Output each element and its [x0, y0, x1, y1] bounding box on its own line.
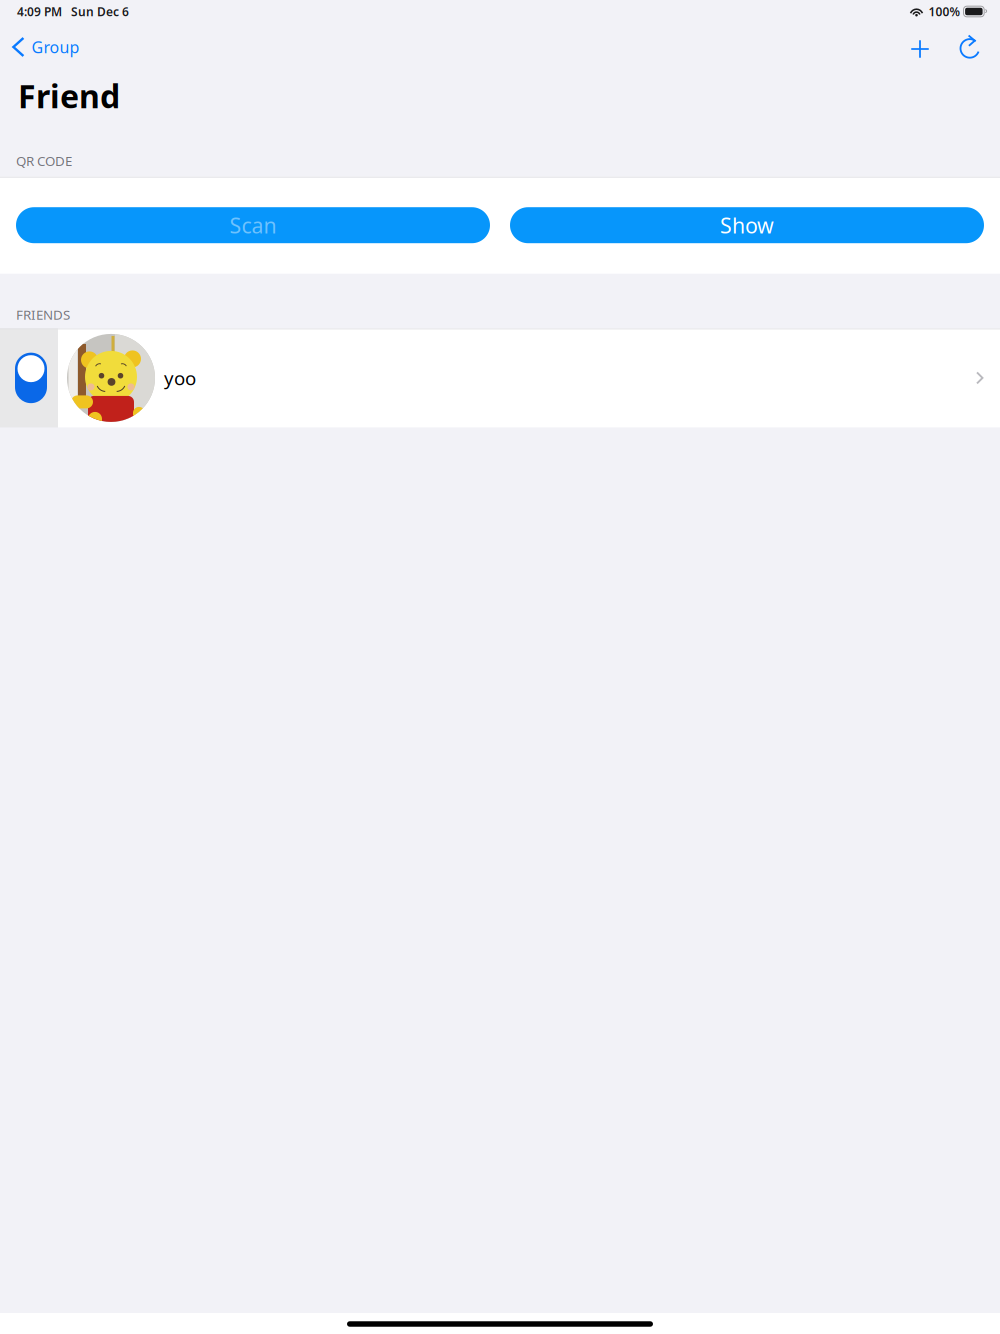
button[interactable]: Show [510, 207, 984, 243]
button[interactable]: Scan [16, 207, 490, 243]
staticText: Show [720, 211, 774, 239]
staticText: Scan [229, 211, 276, 239]
staticText: FRIENDS [16, 306, 70, 323]
button[interactable]: Group [0, 30, 92, 64]
button[interactable]: Refresh [945, 28, 993, 66]
staticText: QR CODE [16, 152, 72, 170]
staticText: Friend [18, 74, 120, 117]
button[interactable]: yoo [58, 328, 1000, 427]
staticText: 100% [928, 3, 960, 19]
staticText: 4:09 PM Sun Dec 6 [17, 3, 129, 19]
button[interactable]: Toggle yoo [0, 328, 58, 427]
button[interactable]: Add friend [897, 28, 945, 66]
staticText: Group [32, 36, 80, 58]
staticText: yoo [164, 365, 196, 390]
